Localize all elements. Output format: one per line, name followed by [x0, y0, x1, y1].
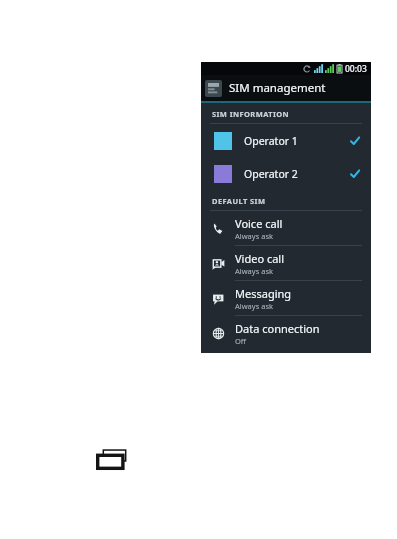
button[interactable]: Operator 1 — [201, 124, 371, 157]
staticText: Operator 1 — [244, 134, 350, 148]
staticText: Off — [235, 336, 247, 346]
button[interactable]: Video call — [201, 246, 371, 280]
staticText: Video call — [235, 251, 285, 266]
staticText: SIM INFORMATION — [212, 109, 290, 119]
other: Operator 1 enabled — [350, 136, 360, 146]
button[interactable]: Operator 2 — [201, 157, 371, 190]
staticText: 00:03 — [345, 63, 367, 75]
button[interactable]: Messaging — [201, 281, 371, 315]
staticText: Operator 2 — [244, 167, 350, 181]
staticText: Data connection — [235, 321, 320, 336]
other: Operator 2 enabled — [350, 169, 360, 179]
button[interactable]: Voice call — [201, 211, 371, 245]
staticText: DEFAULT SIM — [212, 196, 266, 206]
staticText: SIM management — [229, 80, 326, 96]
staticText: Always ask — [235, 301, 274, 311]
button[interactable]: SIM management — [201, 75, 371, 101]
staticText: Always ask — [235, 231, 274, 241]
button[interactable]: Data connection — [201, 316, 371, 350]
staticText: Messaging — [235, 286, 292, 301]
other: Overlapping windows icon — [97, 449, 132, 470]
staticText: Always ask — [235, 266, 274, 276]
staticText: Voice call — [235, 216, 283, 231]
